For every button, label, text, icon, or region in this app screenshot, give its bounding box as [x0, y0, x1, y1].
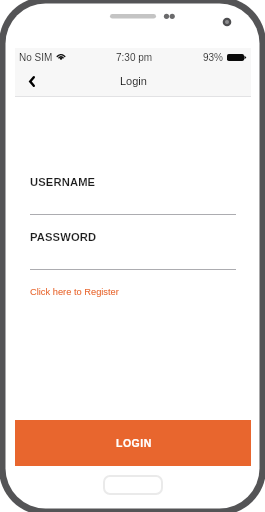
staticText: PASSWORD: [30, 231, 97, 244]
staticText: No SIM: [19, 52, 53, 63]
staticText: 7:30 pm: [116, 52, 153, 63]
staticText: Login: [120, 75, 147, 87]
other: Home: [103, 475, 163, 495]
staticText: USERNAME: [30, 176, 96, 189]
staticText: LOGIN: [116, 437, 152, 449]
button[interactable]: Back: [22, 71, 42, 91]
staticText: 93%: [203, 52, 224, 63]
button[interactable]: LOGIN: [15, 420, 251, 466]
button[interactable]: Click here to Register: [30, 287, 119, 297]
